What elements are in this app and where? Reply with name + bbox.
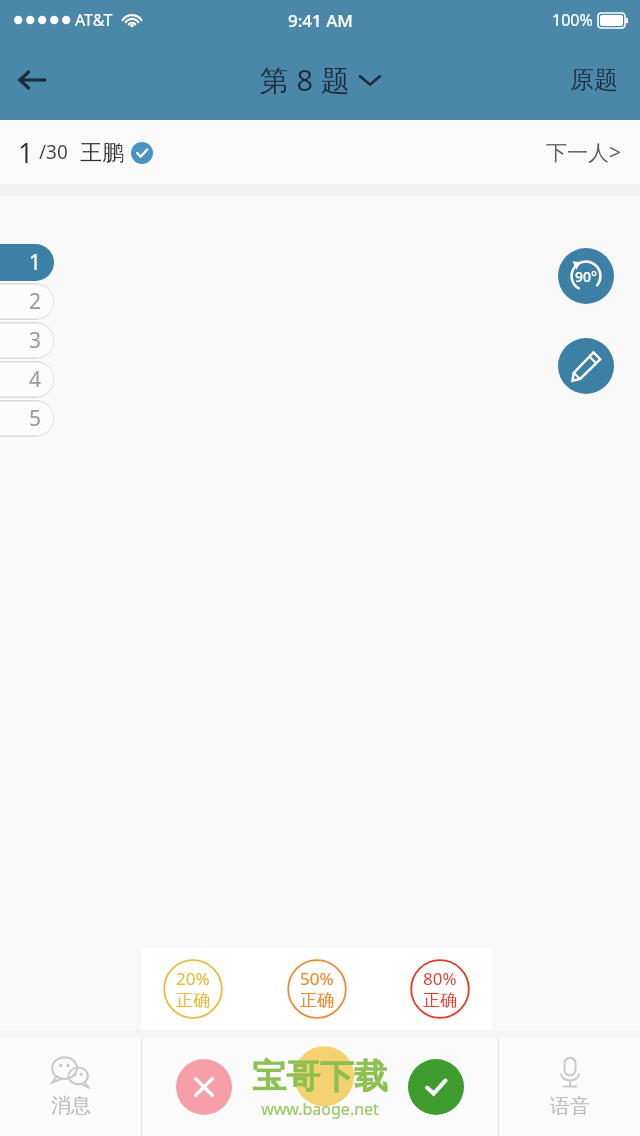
- staticText: 消息: [51, 1093, 91, 1118]
- button[interactable]: 3: [0, 322, 54, 359]
- staticText: 王鹏: [80, 139, 124, 167]
- staticText: /30: [34, 139, 68, 165]
- button[interactable]: Back: [0, 48, 64, 112]
- staticText: AT&T: [75, 9, 113, 31]
- button[interactable]: 50%: [287, 959, 347, 1019]
- staticText: 下一人>: [546, 138, 622, 167]
- button[interactable]: 20%: [163, 959, 223, 1019]
- button[interactable]: 原题: [564, 57, 624, 103]
- staticText: 正确: [300, 990, 334, 1011]
- staticText: 100%: [552, 9, 593, 31]
- button[interactable]: 第 8 题: [260, 60, 380, 100]
- button[interactable]: 80%: [410, 959, 470, 1019]
- staticText: 9:41 AM: [288, 9, 353, 32]
- staticText: 正确: [423, 990, 457, 1011]
- staticText: 2: [29, 287, 42, 316]
- button[interactable]: Rotate 90 degrees: [558, 248, 614, 304]
- staticText: 正确: [176, 990, 210, 1011]
- staticText: www.baoge.net: [261, 1098, 379, 1120]
- button[interactable]: 5: [0, 400, 54, 437]
- staticText: 原题: [570, 65, 618, 95]
- staticText: 第 8 题: [260, 60, 350, 100]
- button[interactable]: 消息: [0, 1038, 141, 1136]
- button[interactable]: Correct: [408, 1059, 464, 1115]
- staticText: 1: [18, 134, 34, 171]
- staticText: 20%: [176, 967, 210, 990]
- staticText: 3: [29, 326, 42, 355]
- button[interactable]: 下一人>: [542, 130, 626, 175]
- button[interactable]: Wrong: [176, 1059, 232, 1115]
- button[interactable]: 2: [0, 283, 54, 320]
- button[interactable]: 4: [0, 361, 54, 398]
- staticText: 80%: [423, 967, 457, 990]
- staticText: 5: [29, 404, 42, 433]
- staticText: 50%: [300, 967, 334, 990]
- staticText: 90°: [575, 267, 597, 286]
- staticText: 4: [29, 365, 42, 394]
- staticText: 1: [29, 248, 42, 277]
- button[interactable]: Edit: [558, 338, 614, 394]
- staticText: 宝哥下载: [252, 1055, 388, 1098]
- button[interactable]: 1: [0, 244, 54, 281]
- staticText: 语音: [550, 1094, 590, 1119]
- button[interactable]: 语音: [499, 1038, 640, 1136]
